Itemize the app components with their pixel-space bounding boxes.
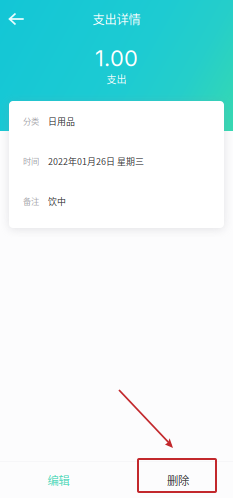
staticText: 时间 — [23, 155, 39, 167]
button[interactable]: 删除 — [117, 462, 233, 498]
staticText: 日用品 — [48, 114, 75, 127]
staticText: 1.00 — [95, 45, 138, 72]
staticText: 饮中 — [48, 194, 66, 207]
button[interactable]: 编辑 — [0, 462, 117, 498]
staticText: 备注 — [23, 195, 39, 207]
staticText: 2022年01月26日 星期三 — [48, 154, 144, 167]
button[interactable]: Back — [0, 5, 34, 33]
staticText: 删除 — [167, 472, 189, 488]
staticText: 分类 — [23, 115, 39, 127]
staticText: 编辑 — [47, 472, 69, 488]
staticText: 支出详情 — [92, 10, 140, 28]
staticText: 支出 — [106, 72, 126, 86]
